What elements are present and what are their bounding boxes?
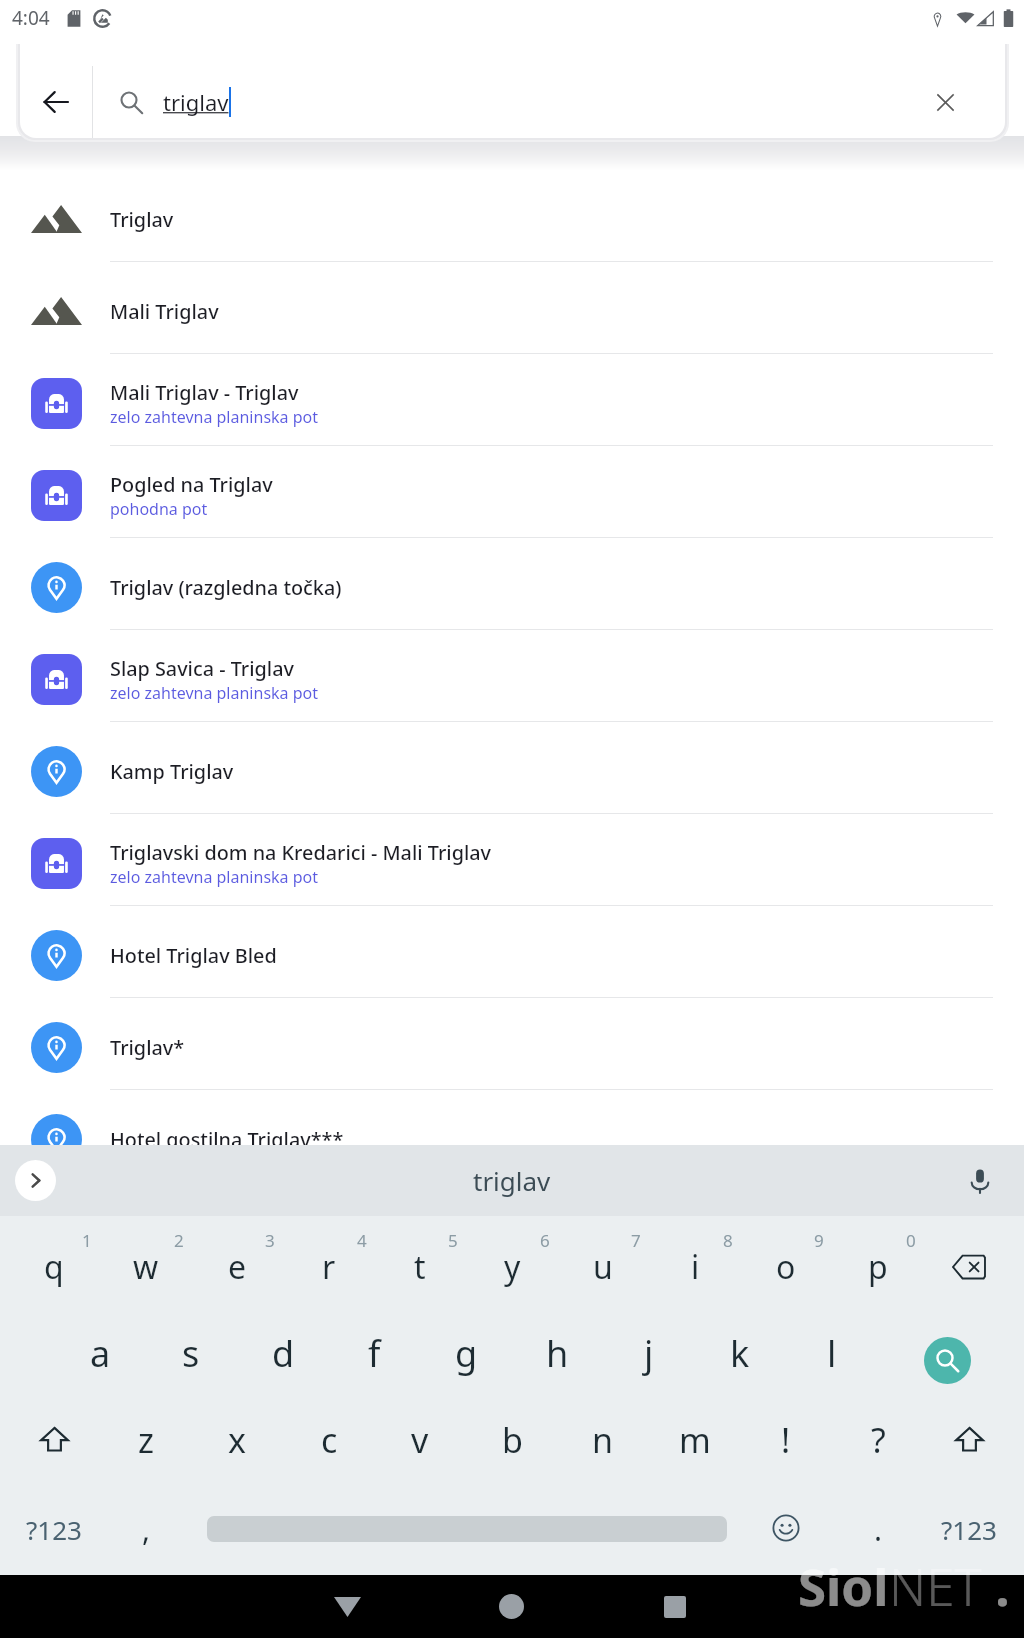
button[interactable]: k — [694, 1306, 786, 1394]
staticText: a — [90, 1329, 111, 1378]
button[interactable]: Triglav — [0, 170, 1024, 262]
button[interactable]: Slap Savica - Triglav — [0, 630, 1024, 722]
staticText: w — [133, 1245, 159, 1289]
staticText: 9 — [814, 1229, 824, 1252]
staticText: Triglavski dom na Kredarici - Mali Trigl… — [110, 839, 492, 866]
button[interactable]: Recents — [641, 1575, 709, 1638]
button[interactable]: Back — [20, 62, 92, 138]
staticText: m — [679, 1417, 711, 1463]
staticText: Hotel Triglav Bled — [110, 942, 277, 969]
staticText: Slap Savica - Triglav — [110, 655, 294, 682]
staticText: zelo zahtevna planinska pot — [110, 406, 319, 428]
staticText: Mali Triglav - Triglav — [110, 379, 299, 406]
button[interactable]: f — [328, 1306, 420, 1394]
button[interactable]: n — [557, 1394, 649, 1484]
staticText: 1 — [82, 1229, 92, 1252]
button[interactable]: w — [100, 1216, 192, 1306]
staticText: u — [593, 1245, 613, 1289]
button[interactable]: a — [54, 1306, 146, 1394]
staticText: f — [368, 1329, 381, 1378]
button[interactable]: v — [374, 1394, 466, 1484]
staticText: n — [592, 1417, 614, 1463]
button[interactable]: Hotel Triglav Bled — [0, 906, 1024, 998]
staticText: Hotel gostilna Triglav*** — [110, 1126, 344, 1153]
button[interactable]: Back — [313, 1575, 381, 1638]
staticText: Triglav — [110, 206, 174, 233]
staticText: 0 — [906, 1229, 916, 1252]
button[interactable]: Shift — [8, 1394, 100, 1484]
staticText: ! — [781, 1417, 791, 1463]
button[interactable]: s — [145, 1306, 237, 1394]
button[interactable]: Triglavski dom na Kredarici - Mali Trigl… — [0, 814, 1024, 906]
staticText: h — [546, 1329, 569, 1378]
button[interactable]: ! — [740, 1394, 832, 1484]
staticText: g — [455, 1329, 478, 1378]
button[interactable]: t — [374, 1216, 466, 1306]
button[interactable]: Backspace — [923, 1216, 1015, 1306]
button[interactable]: z — [100, 1394, 192, 1484]
staticText: ?123 — [941, 1512, 997, 1547]
button[interactable]: Mali Triglav - Triglav — [0, 354, 1024, 446]
button[interactable]: Voice input — [960, 1161, 1000, 1201]
button[interactable]: u — [557, 1216, 649, 1306]
staticText: Mali Triglav — [110, 298, 219, 325]
staticText: zelo zahtevna planinska pot — [110, 866, 319, 888]
button[interactable]: Pogled na Triglav — [0, 446, 1024, 538]
button[interactable]: Mali Triglav — [0, 262, 1024, 354]
staticText: ?123 — [26, 1512, 82, 1547]
staticText: t — [414, 1245, 426, 1289]
staticText: pohodna pot — [110, 498, 208, 520]
staticText: j — [644, 1329, 654, 1378]
staticText: Triglav (razgledna točka) — [110, 574, 342, 601]
button[interactable]: y — [466, 1216, 558, 1306]
staticText: 6 — [540, 1229, 550, 1252]
staticText: z — [138, 1417, 154, 1463]
button[interactable]: p — [832, 1216, 924, 1306]
button[interactable]: b — [466, 1394, 558, 1484]
button[interactable]: Clear — [886, 62, 1005, 138]
button[interactable]: Expand suggestions — [15, 1160, 56, 1201]
staticText: Pogled na Triglav — [110, 471, 273, 498]
button[interactable]: Space — [191, 1484, 740, 1575]
staticText: 8 — [723, 1229, 733, 1252]
staticText: 4 — [357, 1229, 367, 1252]
button[interactable]: r — [283, 1216, 375, 1306]
staticText: e — [228, 1245, 247, 1289]
button[interactable]: e — [191, 1216, 283, 1306]
button[interactable]: d — [237, 1306, 329, 1394]
button[interactable]: m — [649, 1394, 741, 1484]
staticText: , — [142, 1509, 151, 1550]
staticText: . — [982, 1551, 1010, 1620]
button[interactable]: Triglav* — [0, 998, 1024, 1090]
button[interactable]: ? — [832, 1394, 924, 1484]
staticText: zelo zahtevna planinska pot — [110, 682, 319, 704]
staticText: 2 — [174, 1229, 184, 1252]
button[interactable]: Triglav (razgledna točka) — [0, 538, 1024, 630]
button[interactable]: o — [740, 1216, 832, 1306]
button[interactable]: Symbols — [923, 1484, 1015, 1575]
button[interactable]: g — [420, 1306, 512, 1394]
button[interactable]: Search — [901, 1316, 993, 1404]
button[interactable]: Shift — [923, 1394, 1015, 1484]
staticText: Triglav* — [110, 1034, 185, 1061]
staticText: q — [44, 1245, 64, 1289]
button[interactable]: c — [283, 1394, 375, 1484]
staticText: c — [321, 1417, 338, 1463]
staticText: 4:04 — [12, 5, 50, 31]
button[interactable]: , — [100, 1484, 192, 1575]
button[interactable]: h — [511, 1306, 603, 1394]
button[interactable]: j — [603, 1306, 695, 1394]
staticText: triglav — [163, 87, 229, 117]
staticText: Kamp Triglav — [110, 758, 234, 785]
button[interactable]: . — [832, 1484, 924, 1575]
button[interactable]: l — [786, 1306, 878, 1394]
staticText: l — [827, 1329, 837, 1378]
button[interactable]: Symbols — [8, 1484, 100, 1575]
button[interactable]: Home — [477, 1575, 545, 1638]
button[interactable]: Kamp Triglav — [0, 722, 1024, 814]
button[interactable]: Emoji — [740, 1484, 832, 1575]
button[interactable]: Hotel gostilna Triglav*** — [0, 1090, 1024, 1182]
button[interactable]: i — [649, 1216, 741, 1306]
button[interactable]: x — [191, 1394, 283, 1484]
button[interactable]: q — [8, 1216, 100, 1306]
